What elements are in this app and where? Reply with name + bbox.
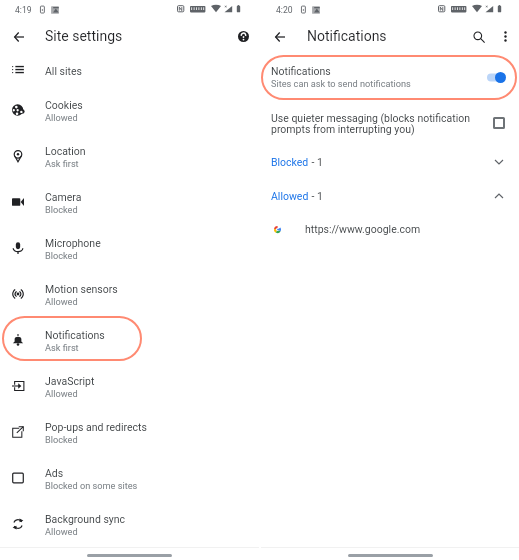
- button[interactable]: [0, 137, 259, 179]
- staticText: 4:20: [276, 5, 293, 15]
- button[interactable]: [261, 108, 519, 140]
- button[interactable]: [261, 220, 519, 240]
- staticText: Allowed: [45, 112, 78, 123]
- staticText: JavaScript: [45, 375, 95, 387]
- button[interactable]: [0, 91, 259, 133]
- button[interactable]: [261, 57, 519, 98]
- button[interactable]: [261, 146, 519, 174]
- button[interactable]: [0, 321, 259, 363]
- staticText: Sites can ask to send notifications: [271, 78, 411, 89]
- staticText: Camera: [45, 191, 82, 203]
- staticText: All sites: [45, 65, 82, 77]
- staticText: Blocked: [271, 156, 309, 168]
- button[interactable]: Help: [233, 26, 254, 47]
- staticText: Ask first: [45, 342, 79, 353]
- button[interactable]: More options: [495, 26, 516, 47]
- staticText: Allowed: [45, 526, 78, 537]
- staticText: https://www.google.com: [305, 223, 421, 235]
- staticText: Site settings: [45, 28, 123, 44]
- button[interactable]: [261, 180, 519, 208]
- staticText: Location: [45, 145, 86, 157]
- staticText: 4:19: [15, 5, 32, 15]
- button[interactable]: [0, 413, 259, 455]
- staticText: Microphone: [45, 237, 101, 249]
- staticText: Motion sensors: [45, 283, 118, 295]
- staticText: Notifications: [307, 28, 387, 44]
- staticText: - 1: [309, 190, 324, 202]
- staticText: Blocked: [45, 250, 78, 261]
- staticText: Ads: [45, 467, 64, 479]
- button[interactable]: [0, 275, 259, 317]
- staticText: Allowed: [271, 190, 309, 202]
- button[interactable]: Back: [267, 24, 292, 49]
- staticText: Blocked: [45, 204, 78, 215]
- staticText: Background sync: [45, 513, 126, 525]
- button[interactable]: [0, 229, 259, 271]
- staticText: Pop-ups and redirects: [45, 421, 147, 433]
- button[interactable]: [0, 459, 259, 501]
- staticText: - 1: [309, 156, 324, 168]
- staticText: Cookies: [45, 99, 83, 111]
- button[interactable]: [0, 367, 259, 409]
- button[interactable]: Search: [468, 26, 489, 47]
- button[interactable]: [0, 56, 259, 88]
- button[interactable]: [0, 183, 259, 225]
- staticText: Blocked: [45, 434, 78, 445]
- staticText: Notifications: [271, 65, 331, 77]
- staticText: Allowed: [45, 296, 78, 307]
- button[interactable]: [0, 505, 259, 547]
- staticText: Allowed: [45, 388, 78, 399]
- staticText: Ask first: [45, 158, 79, 169]
- staticText: Notifications: [45, 329, 105, 341]
- button[interactable]: Back: [6, 24, 31, 49]
- staticText: Use quieter messaging (blocks notificati…: [271, 112, 470, 136]
- staticText: Blocked on some sites: [45, 480, 138, 491]
